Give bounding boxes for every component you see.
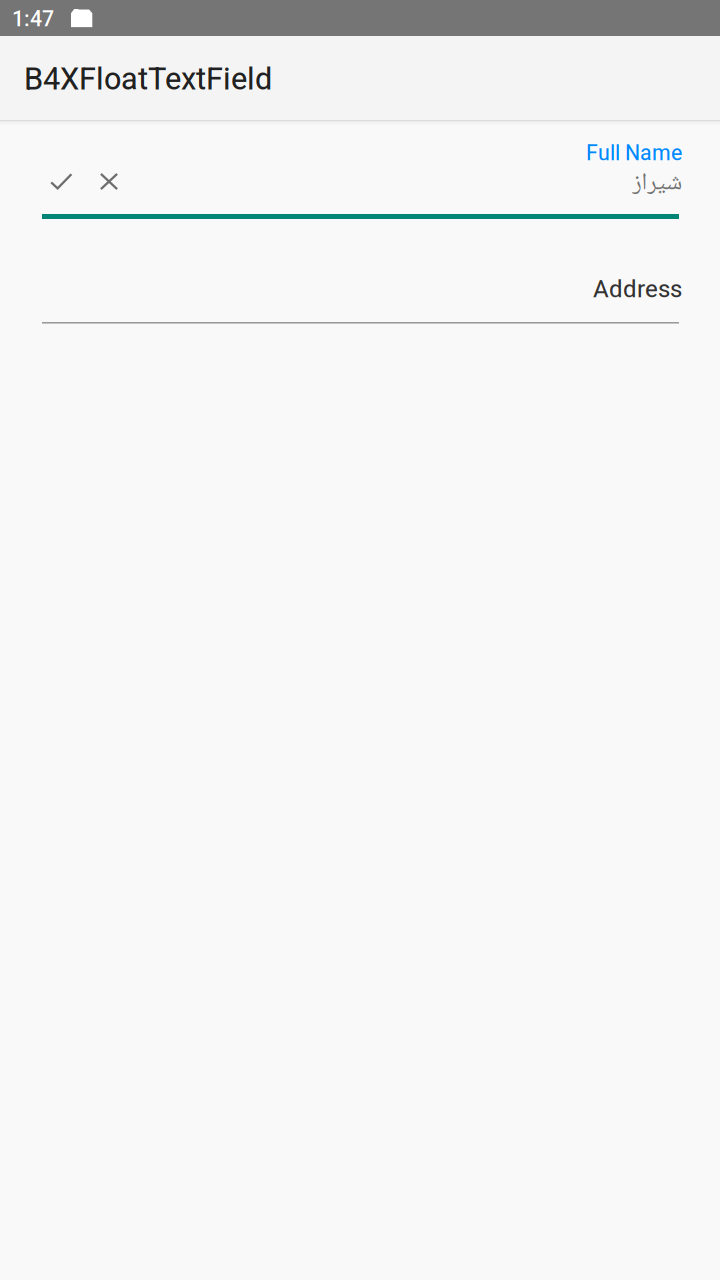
button[interactable]: Full Name: [42, 143, 682, 219]
button[interactable]: Accept: [50, 173, 79, 192]
staticText: Full Name: [586, 140, 682, 165]
staticText: شیراز: [632, 164, 682, 204]
button[interactable]: Clear: [100, 173, 118, 192]
button[interactable]: Address: [42, 277, 682, 324]
staticText: 1:47: [12, 6, 54, 31]
staticText: Address: [593, 275, 682, 303]
staticText: B4XFloatTextField: [24, 61, 272, 97]
